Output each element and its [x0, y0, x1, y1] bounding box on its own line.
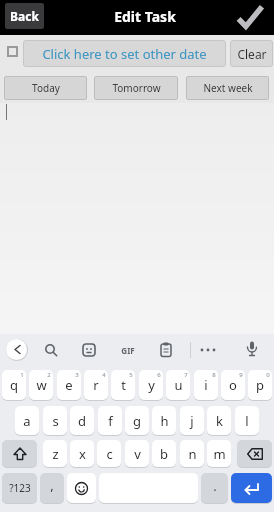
button[interactable]: Today: [4, 76, 87, 100]
staticText: Click here to set other date: [42, 45, 207, 63]
button[interactable]: y: [139, 370, 163, 400]
staticText: 0: [266, 371, 270, 379]
button[interactable]: Click here to set other date: [23, 40, 226, 67]
button[interactable]: q: [2, 370, 26, 400]
button[interactable]: [237, 440, 272, 467]
staticText: a: [23, 412, 31, 430]
button[interactable]: n: [180, 440, 204, 467]
staticText: d: [78, 412, 86, 430]
button[interactable]: [6, 339, 27, 360]
staticText: y: [148, 376, 155, 394]
button[interactable]: v: [125, 440, 149, 467]
staticText: 2: [47, 371, 51, 379]
button[interactable]: s: [43, 406, 67, 435]
staticText: GIF: [121, 345, 135, 356]
staticText: 7: [184, 371, 188, 379]
button[interactable]: [2, 440, 37, 467]
button[interactable]: x: [70, 440, 94, 467]
button[interactable]: o: [221, 370, 245, 400]
button[interactable]: [160, 342, 172, 357]
staticText: p: [256, 376, 264, 394]
staticText: o: [229, 376, 237, 394]
button[interactable]: k: [207, 406, 231, 435]
staticText: 3: [75, 371, 79, 379]
staticText: Next week: [203, 81, 253, 95]
staticText: 4: [102, 371, 106, 379]
button[interactable]: h: [152, 406, 176, 435]
button[interactable]: a: [15, 406, 39, 435]
button[interactable]: r: [84, 370, 108, 400]
staticText: u: [174, 376, 183, 394]
staticText: ,: [50, 476, 54, 494]
button[interactable]: t: [111, 370, 135, 400]
button[interactable]: .: [201, 473, 228, 503]
staticText: b: [160, 445, 168, 463]
staticText: x: [79, 445, 86, 463]
staticText: q: [10, 376, 18, 394]
staticText: 1: [20, 371, 24, 379]
button[interactable]: p: [248, 370, 272, 400]
button[interactable]: [231, 473, 272, 503]
button[interactable]: u: [166, 370, 190, 400]
button[interactable]: b: [152, 440, 176, 467]
button[interactable]: l: [235, 406, 259, 435]
button[interactable]: d: [70, 406, 94, 435]
button[interactable]: c: [97, 440, 121, 467]
button[interactable]: [199, 347, 217, 353]
staticText: Clear: [237, 46, 267, 62]
staticText: c: [106, 445, 113, 463]
staticText: Today: [32, 81, 60, 95]
button[interactable]: Back: [5, 3, 44, 29]
button[interactable]: [82, 343, 96, 357]
staticText: f: [108, 412, 113, 430]
button[interactable]: [45, 344, 58, 357]
button[interactable]: m: [207, 440, 231, 467]
staticText: ?123: [9, 481, 31, 495]
staticText: 5: [129, 371, 133, 379]
staticText: 9: [239, 371, 243, 379]
button[interactable]: ?123: [2, 473, 37, 503]
staticText: j: [190, 412, 194, 430]
staticText: 8: [212, 371, 216, 379]
button[interactable]: Next week: [186, 76, 269, 100]
button[interactable]: GIF: [118, 343, 138, 357]
staticText: r: [93, 376, 99, 394]
staticText: n: [188, 445, 197, 463]
staticText: k: [216, 412, 223, 430]
staticText: l: [245, 412, 249, 430]
button[interactable]: [67, 473, 96, 503]
button[interactable]: i: [194, 370, 218, 400]
staticText: t: [121, 376, 126, 394]
button[interactable]: [246, 341, 258, 358]
button[interactable]: [237, 5, 263, 28]
button[interactable]: Clear: [230, 40, 273, 67]
button[interactable]: f: [98, 406, 122, 435]
button[interactable]: Tomorrow: [94, 76, 178, 100]
staticText: Tomorrow: [112, 81, 161, 95]
staticText: i: [204, 376, 208, 394]
staticText: Edit Task: [114, 7, 176, 26]
staticText: g: [133, 412, 141, 430]
staticText: s: [52, 412, 59, 430]
staticText: 6: [157, 371, 161, 379]
staticText: w: [36, 376, 47, 394]
staticText: m: [213, 445, 226, 463]
staticText: .: [213, 477, 217, 495]
staticText: v: [134, 445, 141, 463]
button[interactable]: j: [180, 406, 204, 435]
button[interactable]: [7, 46, 18, 57]
button[interactable]: z: [43, 440, 67, 467]
staticText: z: [52, 445, 59, 463]
button[interactable]: g: [125, 406, 149, 435]
button[interactable]: ,: [40, 473, 64, 503]
button[interactable]: e: [57, 370, 81, 400]
staticText: e: [65, 376, 73, 394]
button[interactable]: w: [29, 370, 53, 400]
staticText: Back: [10, 8, 39, 24]
staticText: h: [160, 412, 169, 430]
